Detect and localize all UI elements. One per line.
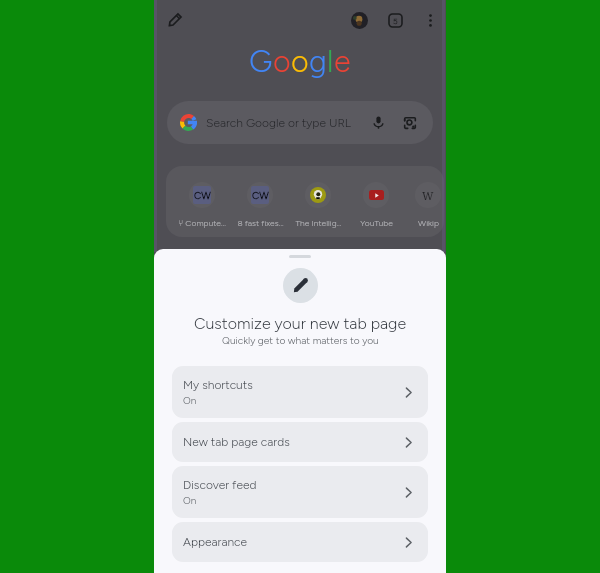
staticText: New tab page cards (183, 435, 290, 449)
button[interactable]: Customize new tab page (159, 4, 191, 36)
button[interactable]: Discover feed (172, 466, 428, 518)
staticText: Quickly get to what matters to you (222, 334, 379, 346)
button[interactable]: Search Google or type URL (167, 101, 433, 144)
button[interactable]: More options (419, 9, 441, 31)
button[interactable]: Appearance (172, 522, 428, 562)
staticText: W (422, 188, 434, 203)
staticText: Discover feed (183, 478, 257, 492)
staticText: My shortcuts (183, 378, 253, 392)
staticText: YouTube (360, 218, 393, 228)
button[interactable]: My shortcuts (172, 366, 428, 418)
button[interactable]: Search by voice (371, 115, 386, 130)
button[interactable]: The Intellig… (289, 166, 347, 237)
staticText: Wikip (418, 218, 439, 228)
staticText: CW (252, 189, 269, 201)
staticText: CW (194, 189, 211, 201)
staticText: o (291, 43, 309, 80)
staticText: o (273, 43, 291, 80)
staticText: 8 fast fixes… (237, 218, 284, 228)
staticText: Search Google or type URL (206, 116, 351, 130)
staticText: g (309, 43, 327, 80)
button[interactable]: YouTube (347, 166, 405, 237)
button[interactable]: CW (231, 166, 289, 237)
staticText: On (183, 394, 197, 406)
button[interactable]: Switch or close tabs (384, 9, 406, 31)
staticText: e (334, 43, 351, 80)
button[interactable]: Account and sync (348, 9, 370, 31)
staticText: 5 (393, 16, 398, 26)
staticText: l (327, 43, 334, 80)
button[interactable]: New tab page cards (172, 422, 428, 462)
staticText: Appearance (183, 535, 248, 549)
staticText: The Intellig… (295, 218, 342, 228)
button[interactable]: W (405, 166, 444, 237)
staticText: ⑂ Compute… (178, 218, 226, 228)
staticText: Customize your new tab page (194, 314, 407, 333)
button[interactable]: CW (173, 166, 231, 237)
button[interactable]: Search with Google Lens (403, 116, 417, 130)
staticText: On (183, 494, 197, 506)
staticText: G (249, 43, 273, 80)
